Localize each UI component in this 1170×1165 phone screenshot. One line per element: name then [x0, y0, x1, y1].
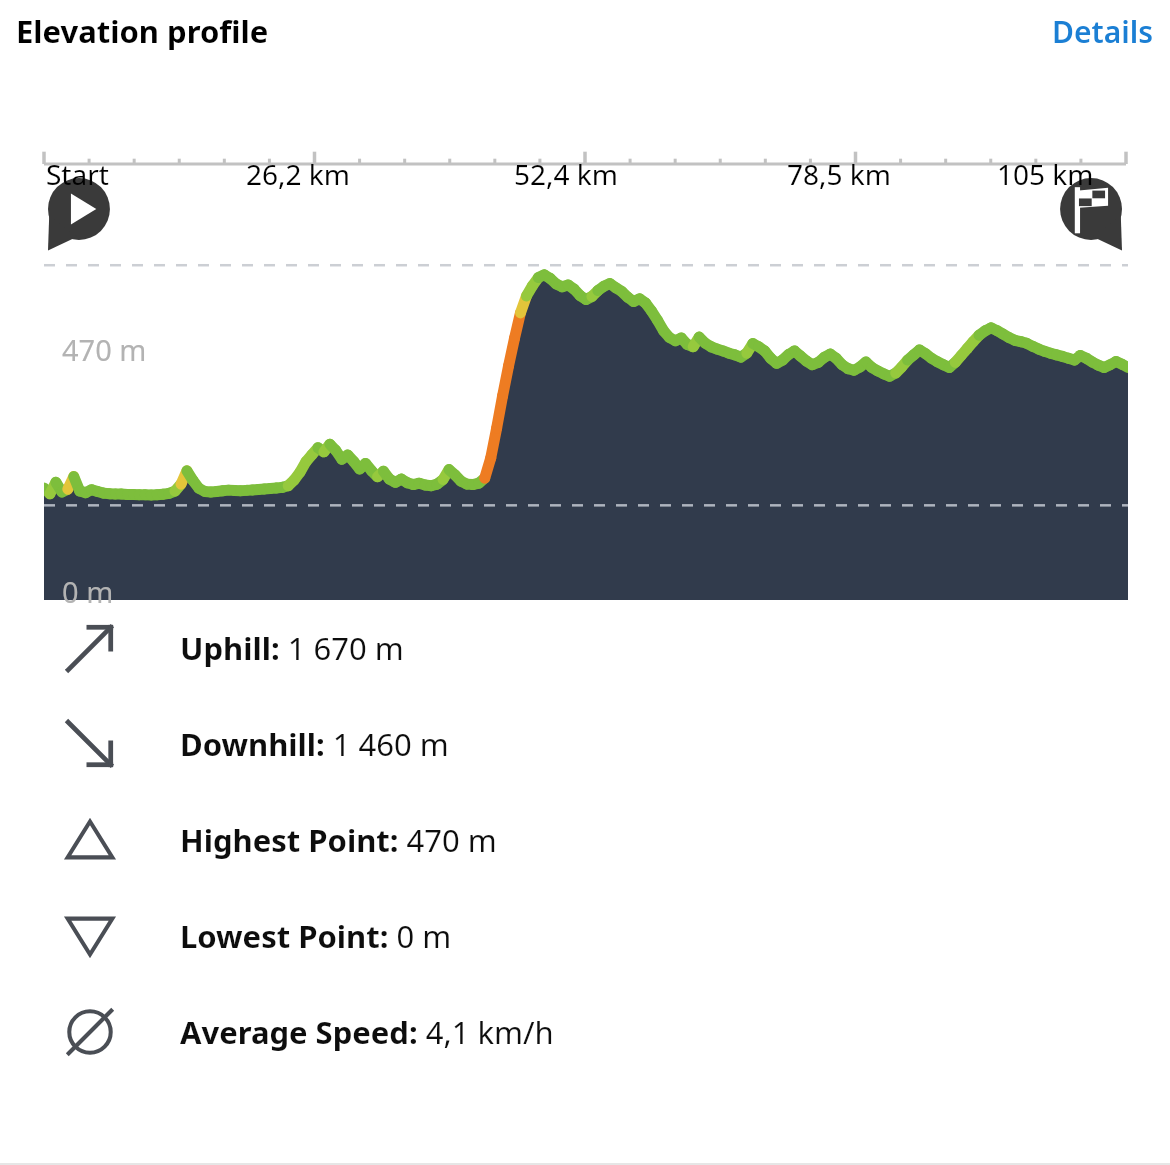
- button[interactable]: Downhill: [0, 696, 1170, 792]
- staticText: 78,5 km: [787, 155, 891, 193]
- staticText: 52,4 km: [514, 155, 618, 193]
- staticText: 105 km: [997, 155, 1094, 193]
- staticText: Lowest Point: 0 m: [180, 915, 452, 957]
- other: Highest point: [62, 812, 118, 868]
- staticText: Details: [1052, 11, 1154, 52]
- button[interactable]: Lowest point: [0, 888, 1170, 984]
- button[interactable]: Average speed: [0, 984, 1170, 1080]
- button[interactable]: Uphill: [0, 600, 1170, 696]
- other: Average speed: [62, 1004, 118, 1060]
- staticText: Start: [46, 155, 109, 193]
- staticText: 470 m: [62, 330, 147, 369]
- staticText: Highest Point: 470 m: [180, 819, 497, 861]
- staticText: Uphill: 1 670 m: [180, 627, 404, 669]
- other: Downhill: [62, 716, 118, 772]
- staticText: 0 m: [62, 572, 114, 611]
- button[interactable]: Details: [1036, 3, 1170, 60]
- other: Uphill: [62, 620, 118, 676]
- button[interactable]: Highest point: [0, 792, 1170, 888]
- staticText: Average Speed: 4,1 km/h: [180, 1011, 554, 1053]
- staticText: Downhill: 1 460 m: [180, 723, 449, 765]
- staticText: Elevation profile: [16, 10, 269, 52]
- staticText: 26,2 km: [246, 155, 350, 193]
- other: Lowest point: [62, 908, 118, 964]
